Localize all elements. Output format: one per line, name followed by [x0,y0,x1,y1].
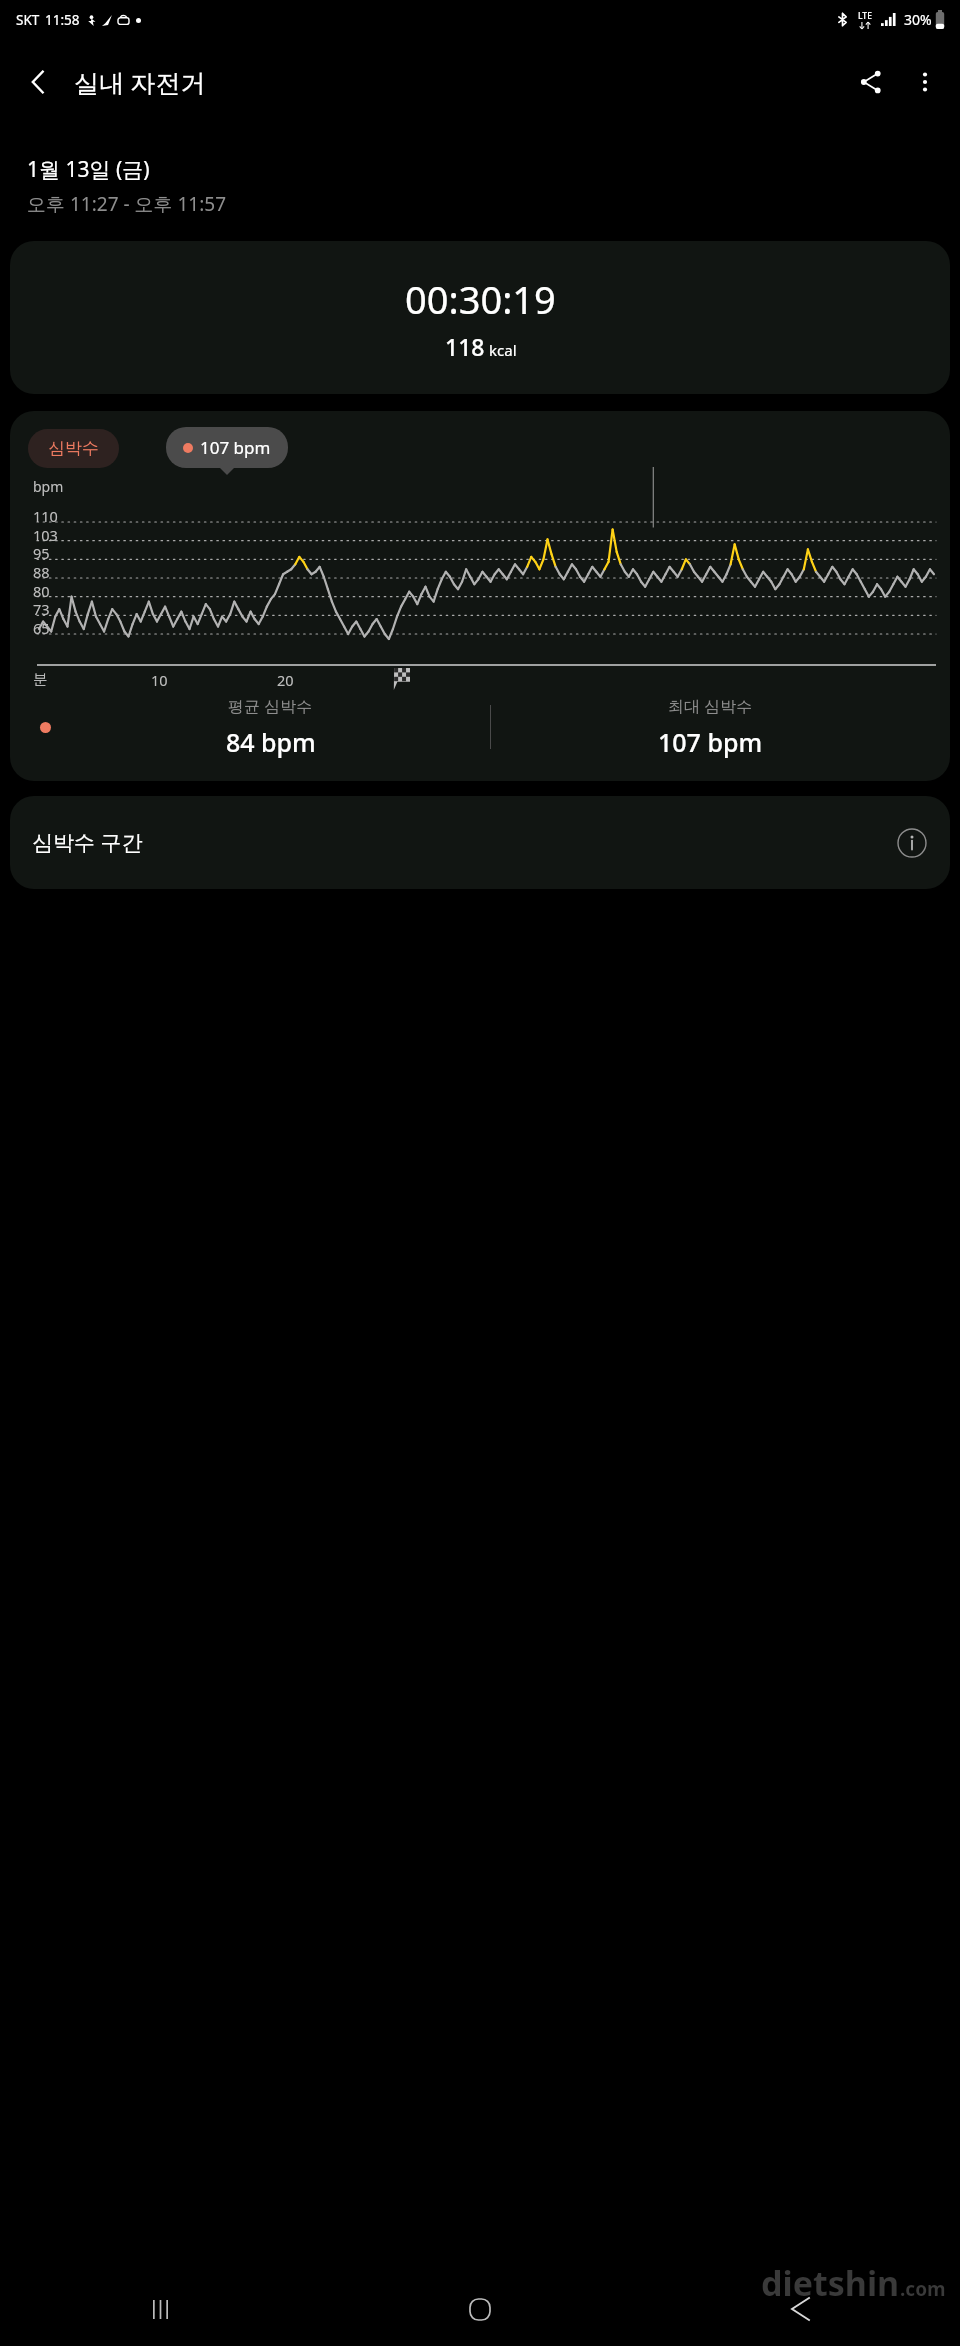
staticText: 평균 심박수 [228,695,313,717]
staticText: 110 [33,506,58,526]
staticText: kcal [489,340,517,360]
staticText: 88 [33,562,50,582]
button[interactable]: More options [898,55,952,109]
staticText: 107 bpm [658,725,763,759]
button[interactable]: Back [640,2272,960,2346]
staticText: 1월 13일 (금) [27,155,150,184]
staticText: bpm [33,477,64,496]
staticText: 103 [33,525,58,545]
staticText: 107 bpm [200,436,271,459]
staticText: 84 bpm [226,725,316,759]
staticText: 실내 자전거 [74,65,206,99]
staticText: 심박수 구간 [32,828,143,857]
staticText: 95 [33,543,50,563]
staticText: 65 [33,618,50,638]
button[interactable]: Information [892,823,932,863]
staticText: 오후 11:27 - 오후 11:57 [27,191,227,217]
staticText: dietshin [761,2260,900,2306]
staticText: 20 [277,670,294,690]
staticText: 11:58 [45,11,80,29]
button[interactable]: 심박수 구간 [10,796,950,889]
button[interactable]: Home [320,2272,640,2346]
staticText: 10 [151,670,168,690]
staticText: 심박수 [48,438,99,459]
staticText: LTE [858,10,872,22]
staticText: 분 [33,670,48,688]
button[interactable]: 심박수 [28,429,119,468]
staticText: 30% [904,10,932,29]
button[interactable]: Back [10,54,66,110]
staticText: 118 [445,331,485,362]
staticText: .com [900,2276,946,2302]
staticText: 최대 심박수 [668,695,753,717]
button[interactable]: 00:30:19 [10,241,950,394]
staticText: 73 [33,599,50,619]
button[interactable]: Share [844,55,898,109]
staticText: SKT [16,11,40,29]
button[interactable]: 107 bpm [166,427,288,468]
button[interactable]: Recents [0,2272,320,2346]
staticText: 00:30:19 [405,273,556,325]
staticText: 80 [33,581,50,601]
